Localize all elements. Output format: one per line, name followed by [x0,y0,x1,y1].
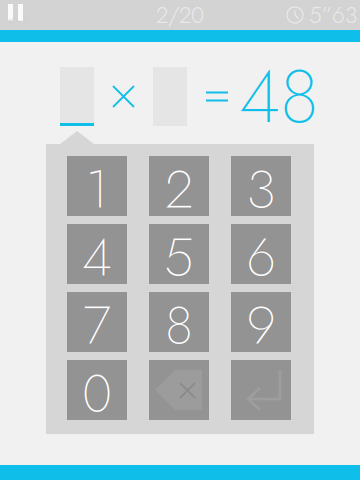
staticText: ポーズ [6,16,30,27]
button[interactable]: 5 [149,224,209,284]
staticText: 3 [246,150,275,228]
button[interactable]: Pause [0,0,40,30]
button[interactable]: 4 [67,224,127,284]
staticText: 48 [239,43,319,149]
staticText: 9 [246,286,275,364]
staticText: 8 [165,286,193,364]
button[interactable]: 0 [67,360,127,420]
button[interactable]: 8 [149,292,209,352]
staticText: 5”63 [309,0,357,31]
staticText: 5 [164,218,194,296]
staticText: 2/20 [156,0,204,31]
button[interactable]: 7 [67,292,127,352]
button[interactable]: 6 [231,224,291,284]
button[interactable]: 9 [231,292,291,352]
button[interactable]: Delete [149,360,209,420]
staticText: 4 [82,218,112,296]
button[interactable]: 2 [149,156,209,216]
button[interactable]: 3 [231,156,291,216]
button[interactable]: First operand, selected [60,67,94,126]
staticText: 6 [246,218,275,296]
staticText: 1 [85,150,108,228]
button[interactable]: 1 [67,156,127,216]
staticText: 7 [83,286,111,364]
staticText: 0 [82,354,112,432]
staticText: 2 [165,150,193,228]
